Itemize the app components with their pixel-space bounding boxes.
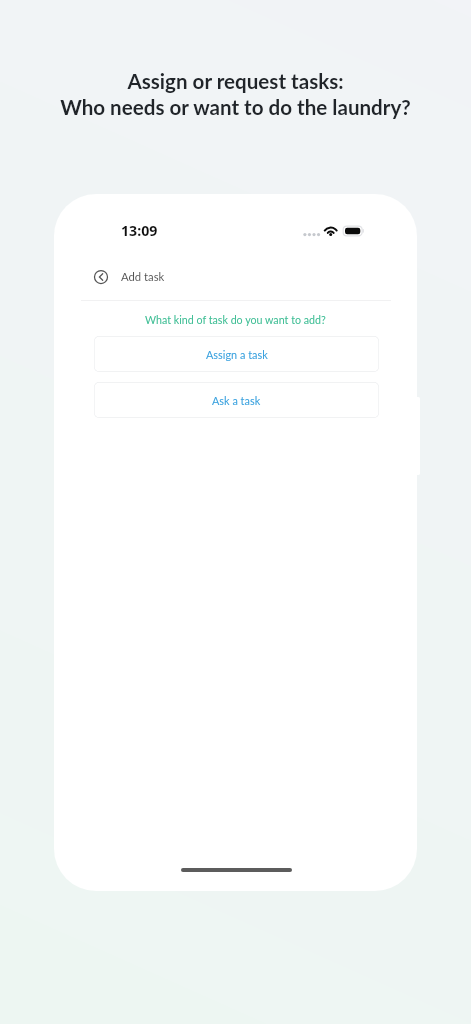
other: Back: [92, 268, 110, 286]
button[interactable]: Ask a task: [94, 382, 379, 418]
button[interactable]: Back: [92, 262, 165, 292]
staticText: Assign or request tasks: Who needs or wa…: [60, 69, 411, 120]
staticText: 13:09: [121, 221, 158, 240]
staticText: Ask a task: [212, 394, 261, 407]
button[interactable]: Assign a task: [94, 336, 379, 372]
staticText: What kind of task do you want to add?: [145, 313, 326, 326]
staticText: Add task: [121, 270, 165, 284]
staticText: Assign a task: [206, 348, 268, 361]
